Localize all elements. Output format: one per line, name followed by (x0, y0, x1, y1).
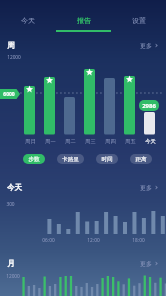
button[interactable]: 今天 (0, 182, 166, 193)
staticText: 更多 (140, 260, 152, 268)
staticText: 更多 (140, 42, 152, 50)
staticText: 距离 (135, 156, 147, 163)
staticText: 周一 (45, 138, 56, 145)
staticText: 18:00 (132, 237, 145, 244)
staticText: 12:00 (87, 237, 100, 244)
button[interactable]: 距离 (130, 154, 152, 164)
button[interactable]: 步数 (23, 154, 45, 164)
button[interactable]: 月 (0, 258, 166, 269)
staticText: 周五 (125, 138, 136, 145)
button[interactable]: 周 (0, 40, 166, 51)
staticText: 月 (7, 259, 15, 268)
button[interactable]: 报告 (56, 0, 111, 32)
staticText: 时间 (101, 156, 113, 163)
button[interactable]: 今天 (0, 0, 56, 32)
button[interactable]: 设置 (111, 0, 166, 32)
button[interactable]: 时间 (96, 154, 118, 164)
staticText: 更多 (140, 184, 152, 192)
staticText: 2986 (142, 102, 156, 110)
staticText: 周三 (85, 138, 96, 145)
staticText: 卡路里 (62, 156, 79, 163)
staticText: 周日 (25, 138, 36, 145)
staticText: 周四 (105, 138, 116, 145)
staticText: 步数 (28, 156, 40, 163)
staticText: 今天 (7, 183, 22, 192)
staticText: 报告 (77, 16, 91, 25)
staticText: 周 (7, 41, 15, 50)
staticText: 06:00 (42, 237, 55, 244)
staticText: 今天 (145, 138, 156, 145)
staticText: 设置 (132, 16, 146, 25)
staticText: 12000 (6, 273, 20, 280)
button[interactable]: 卡路里 (57, 154, 84, 164)
staticText: 12000 (7, 54, 21, 61)
staticText: 今天 (21, 16, 35, 25)
staticText: 周二 (65, 138, 76, 145)
staticText: 300 (6, 201, 15, 208)
staticText: 6000 (3, 91, 15, 98)
